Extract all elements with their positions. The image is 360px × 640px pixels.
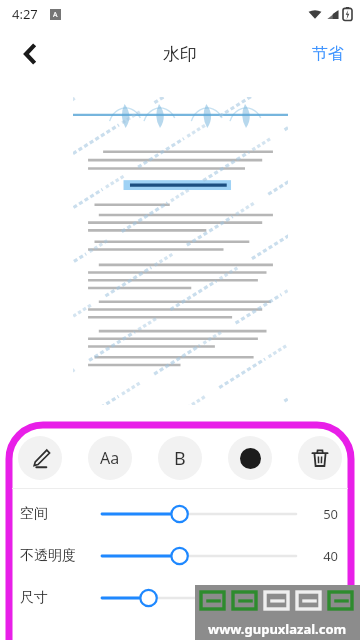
button[interactable]: 节省: [296, 28, 360, 80]
staticText: 空间: [20, 505, 98, 523]
staticText: www.gupuxlazal.com: [208, 620, 347, 638]
button[interactable]: 不透明度: [12, 535, 348, 577]
staticText: A: [53, 10, 58, 20]
staticText: Aa: [100, 447, 120, 469]
staticText: 30: [300, 589, 338, 607]
button[interactable]: Color: [228, 436, 272, 480]
button[interactable]: Back: [6, 30, 54, 78]
button[interactable]: 尺寸: [12, 577, 348, 619]
staticText: 40: [300, 547, 338, 565]
staticText: B: [174, 446, 186, 471]
staticText: 50: [300, 505, 338, 523]
staticText: 4:27: [12, 5, 38, 23]
button[interactable]: Bold: [158, 436, 202, 480]
button[interactable]: Delete: [298, 436, 342, 480]
staticText: 节省: [312, 44, 344, 64]
staticText: 不透明度: [20, 547, 98, 565]
staticText: 尺寸: [20, 589, 98, 607]
staticText: 水印: [163, 44, 197, 65]
button[interactable]: 空间: [12, 493, 348, 535]
button[interactable]: Text style: [88, 436, 132, 480]
button[interactable]: Pen: [18, 436, 62, 480]
